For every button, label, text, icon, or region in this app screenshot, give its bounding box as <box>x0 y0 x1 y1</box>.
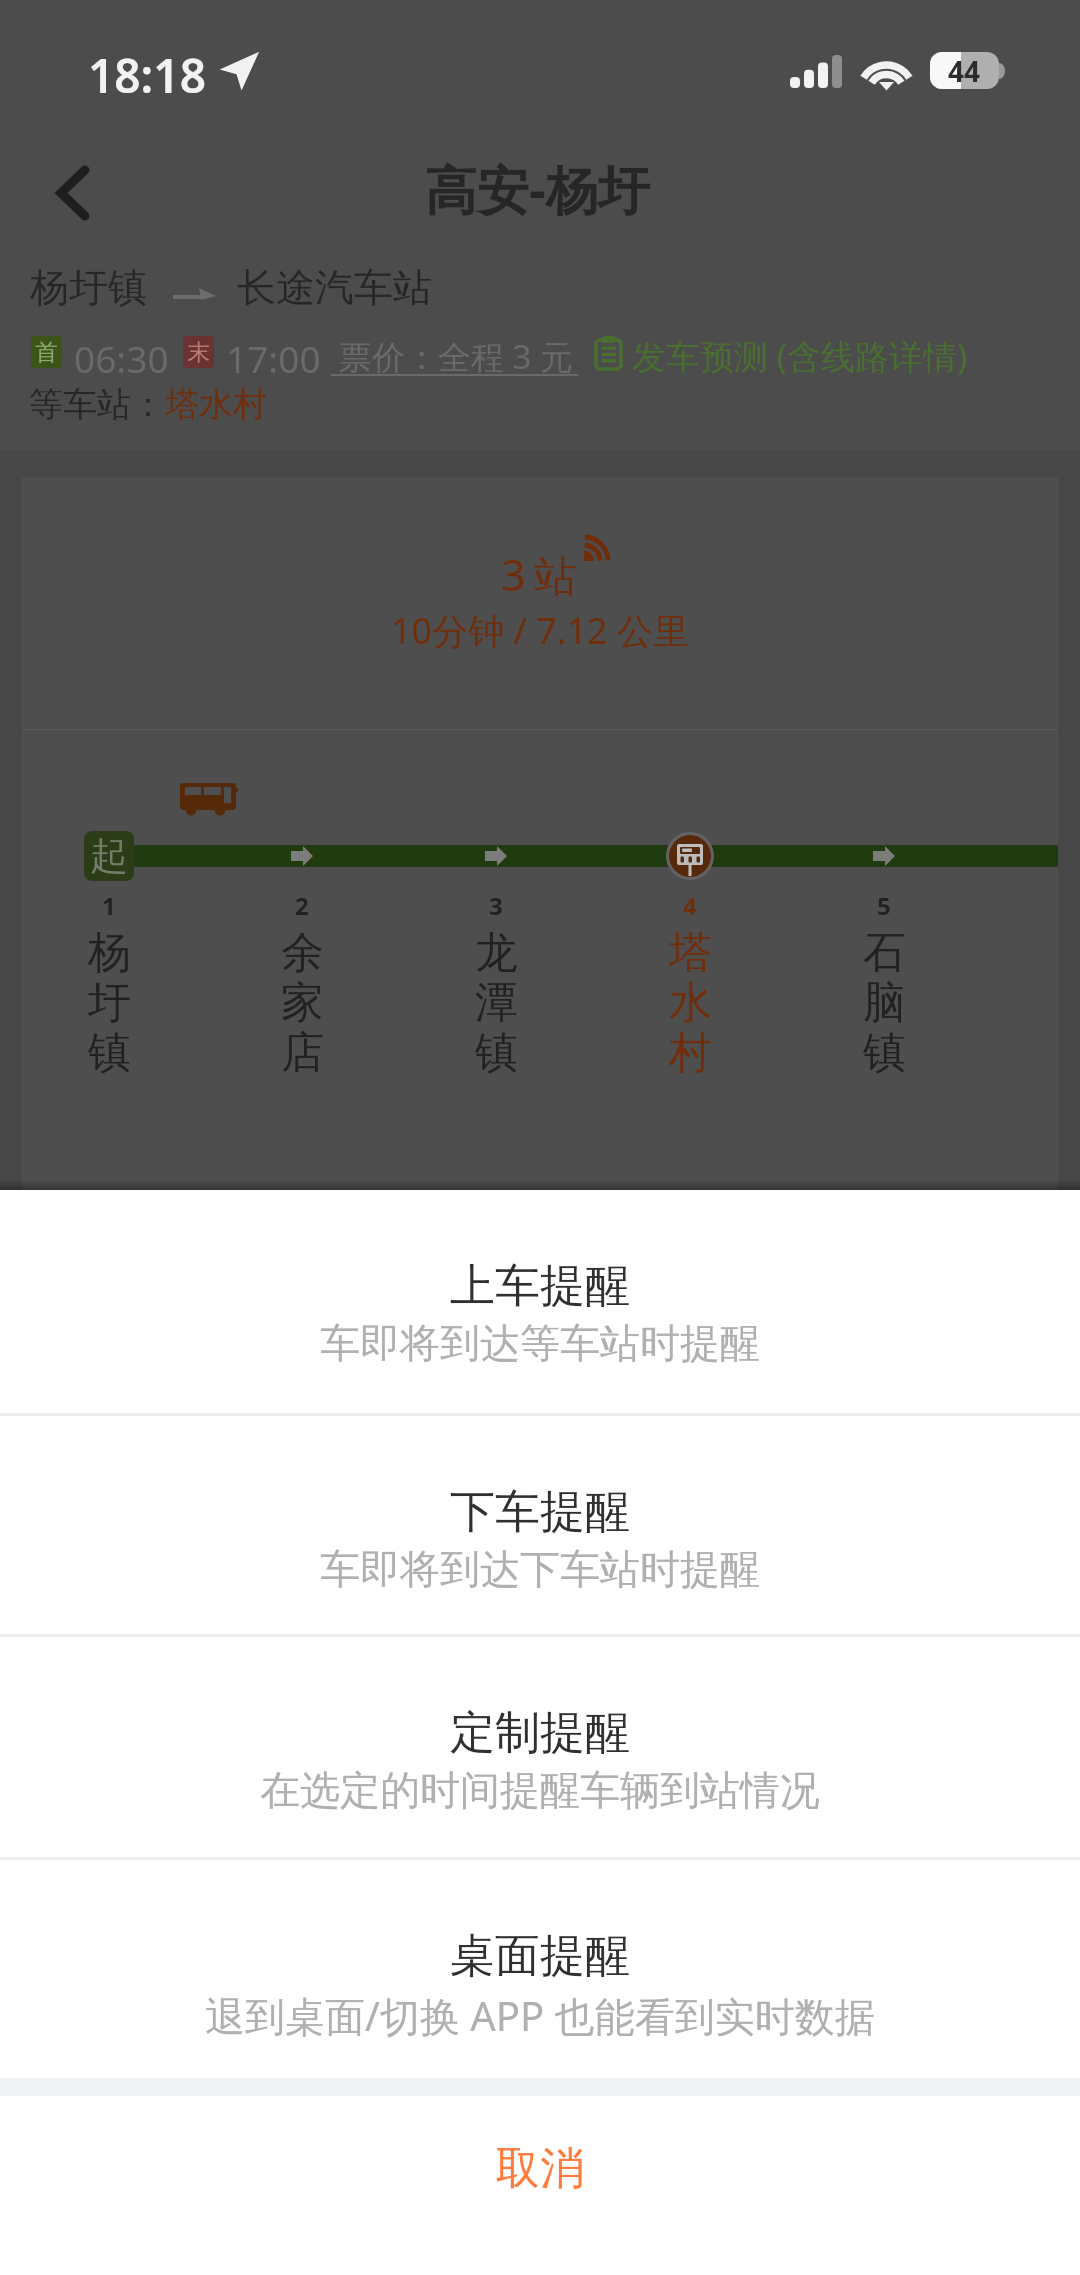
button[interactable]: Back <box>25 134 121 252</box>
staticText: 3 <box>489 889 503 922</box>
staticText: 首 <box>35 338 58 367</box>
staticText: 圩 <box>88 976 131 1026</box>
staticText: 起 <box>90 832 128 880</box>
staticText: 塔 <box>669 926 712 976</box>
staticText: 票价：全程 3 元 <box>339 334 574 379</box>
staticText: 桌面提醒 <box>450 1928 630 1985</box>
staticText: 杨 <box>88 926 131 976</box>
staticText: 镇 <box>88 1026 131 1076</box>
staticText: 17:00 <box>226 333 321 383</box>
staticText: 石 <box>863 926 906 976</box>
button[interactable]: 下车提醒 <box>0 1416 1080 1634</box>
staticText: 车即将到达等车站时提醒 <box>320 1318 760 1368</box>
staticText: 高安-杨圩 <box>425 153 650 224</box>
staticText: 村 <box>669 1026 712 1076</box>
staticText: 站 <box>534 550 577 604</box>
staticText: 潭 <box>475 976 518 1026</box>
button[interactable]: 定制提醒 <box>0 1637 1080 1857</box>
staticText: 发车预测 (含线路详情) <box>632 333 968 379</box>
button[interactable]: 桌面提醒 <box>0 1860 1080 2078</box>
staticText: 等车站： <box>29 383 165 426</box>
staticText: 退到桌面/切换 APP 也能看到实时数据 <box>205 1988 875 2043</box>
staticText: 上车提醒 <box>450 1258 630 1315</box>
staticText: 镇 <box>475 1026 518 1076</box>
staticText: 10分钟 / 7.12 公里 <box>22 606 1058 655</box>
staticText: 1 <box>102 889 116 922</box>
staticText: 塔水村 <box>165 383 267 426</box>
button[interactable]: 取消 <box>0 2096 1080 2275</box>
staticText: 5 <box>877 889 891 922</box>
staticText: 44 <box>948 52 981 89</box>
staticText: 店 <box>281 1026 324 1076</box>
staticText: 脑 <box>863 976 906 1026</box>
staticText: 4 <box>683 889 697 922</box>
staticText: 3 <box>501 545 526 604</box>
staticText: 定制提醒 <box>450 1705 630 1762</box>
staticText: 18:18 <box>88 44 206 107</box>
staticText: 杨圩镇 <box>30 263 147 312</box>
staticText: 水 <box>669 976 712 1026</box>
staticText: 车即将到达下车站时提醒 <box>320 1544 760 1594</box>
staticText: 取消 <box>496 2141 584 2196</box>
staticText: 06:30 <box>74 333 169 383</box>
staticText: 余 <box>281 926 324 976</box>
staticText: 龙 <box>475 926 518 976</box>
staticText: 2 <box>295 889 309 922</box>
staticText: 在选定的时间提醒车辆到站情况 <box>260 1765 820 1815</box>
staticText: 下车提醒 <box>450 1484 630 1541</box>
staticText: 末 <box>187 338 210 367</box>
staticText: 镇 <box>863 1026 906 1076</box>
staticText: 长途汽车站 <box>237 263 432 312</box>
staticText: 家 <box>281 976 324 1026</box>
button[interactable]: 上车提醒 <box>0 1190 1080 1413</box>
